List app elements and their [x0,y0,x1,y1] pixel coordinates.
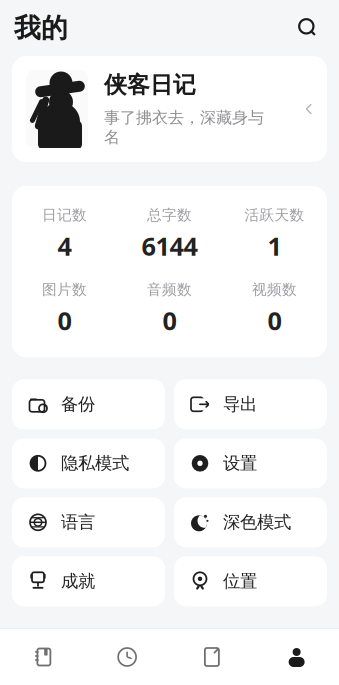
staticText: 1 [267,229,281,263]
staticText: 活跃天数 [244,206,304,224]
button[interactable]: 位置 [174,556,327,606]
staticText: 侠客日记 [104,71,196,99]
staticText: 深色模式 [223,512,291,533]
staticText: 0 [57,304,71,337]
staticText: 视频数 [252,281,297,299]
staticText: 隐私模式 [61,453,129,474]
button[interactable]: 语言 [12,497,165,547]
button[interactable]: 导出 [174,379,327,429]
staticText: 位置 [223,571,257,592]
staticText: 事了拂衣去，深藏身与名 [104,108,264,147]
staticText: 语言 [61,512,95,533]
button[interactable]: 隐私模式 [12,438,165,488]
button[interactable]: Search [291,11,325,45]
staticText: 日记数 [42,206,87,224]
staticText: 音频数 [147,281,192,299]
staticText: 4 [57,229,71,263]
staticText: 0 [267,304,281,337]
button[interactable]: 深色模式 [174,497,327,547]
button[interactable]: Journal [0,632,85,682]
staticText: 设置 [223,453,257,474]
staticText: 图片数 [42,281,87,299]
staticText: 导出 [223,394,257,415]
staticText: 成就 [61,571,95,592]
button[interactable]: History [85,632,170,682]
staticText: 0 [162,304,176,337]
staticText: 6144 [141,229,197,263]
button[interactable]: Documents [169,632,254,682]
button[interactable]: Profile [254,632,339,682]
button[interactable]: 设置 [174,438,327,488]
button[interactable]: 侠客日记 [12,56,327,162]
staticText: 我的 [14,12,68,44]
staticText: 备份 [61,394,95,415]
button[interactable]: 成就 [12,556,165,606]
button[interactable]: 备份 [12,379,165,429]
staticText: 总字数 [147,206,192,224]
